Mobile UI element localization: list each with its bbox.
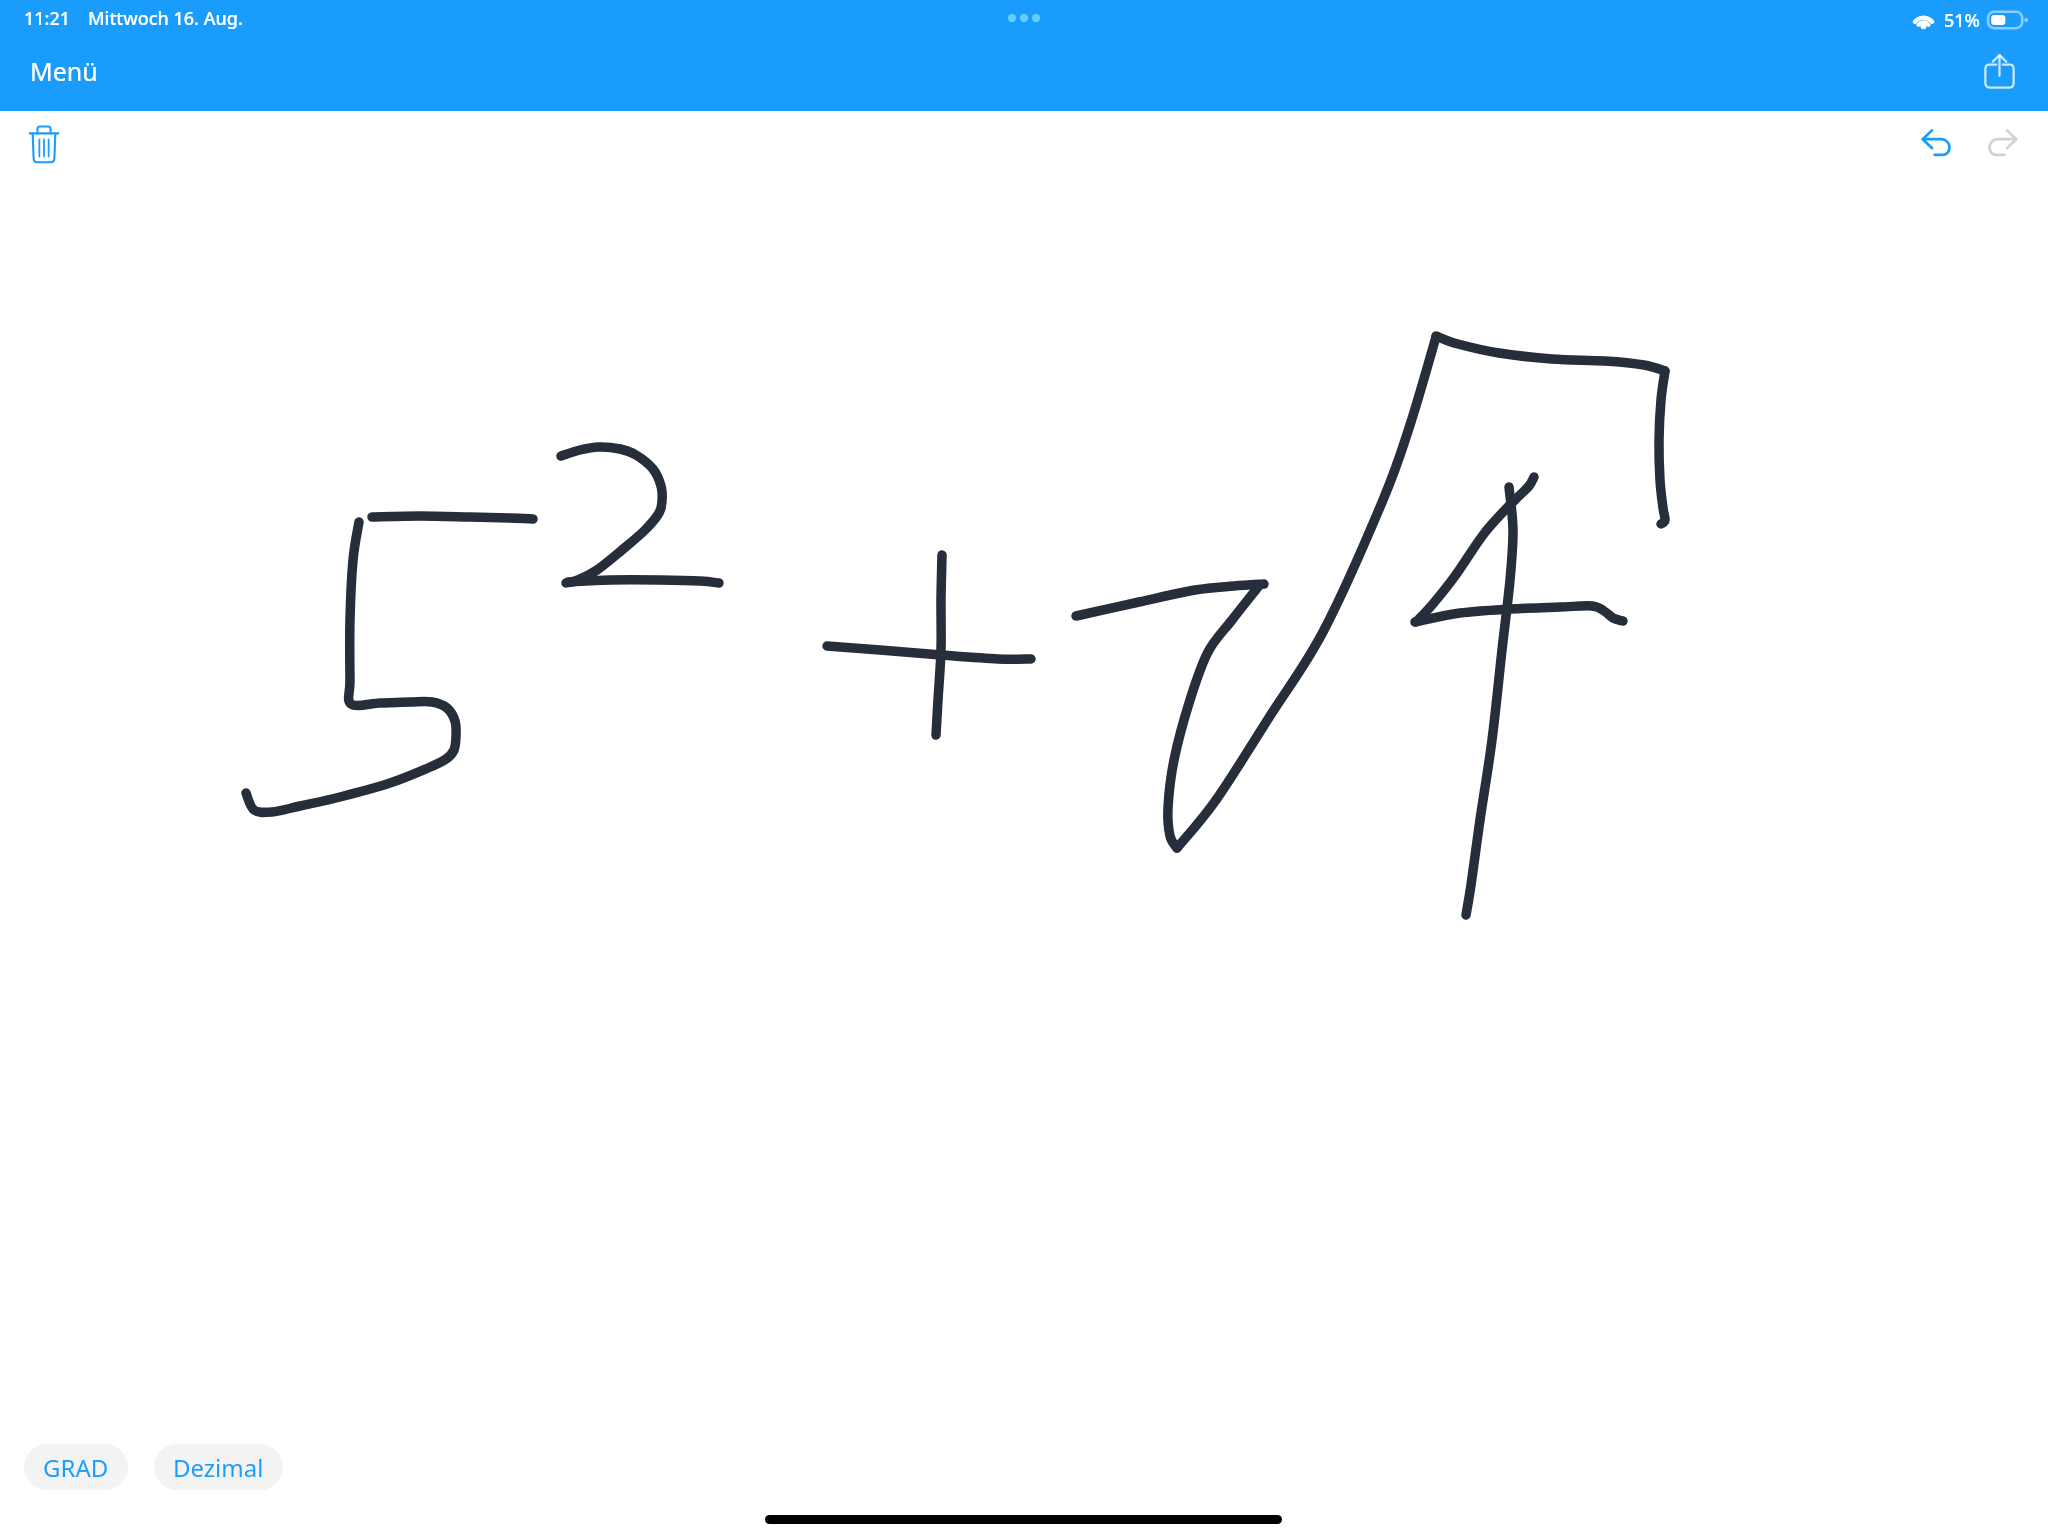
staticText: GRAD [43, 1451, 109, 1484]
button[interactable]: GRAD [24, 1444, 128, 1490]
button[interactable]: Menü [24, 50, 104, 92]
button[interactable]: Redo [1980, 124, 2024, 168]
staticText: Mittwoch 16. Aug. [88, 6, 243, 31]
staticText: Dezimal [173, 1451, 264, 1484]
button[interactable]: Share [1979, 50, 2020, 95]
staticText: 51% [1944, 8, 1980, 33]
staticText: 11:21 [24, 6, 71, 31]
button[interactable]: Dezimal [154, 1444, 283, 1490]
staticText: Menü [30, 54, 98, 88]
button[interactable]: Undo [1915, 124, 1959, 168]
button[interactable]: Delete [28, 125, 60, 164]
